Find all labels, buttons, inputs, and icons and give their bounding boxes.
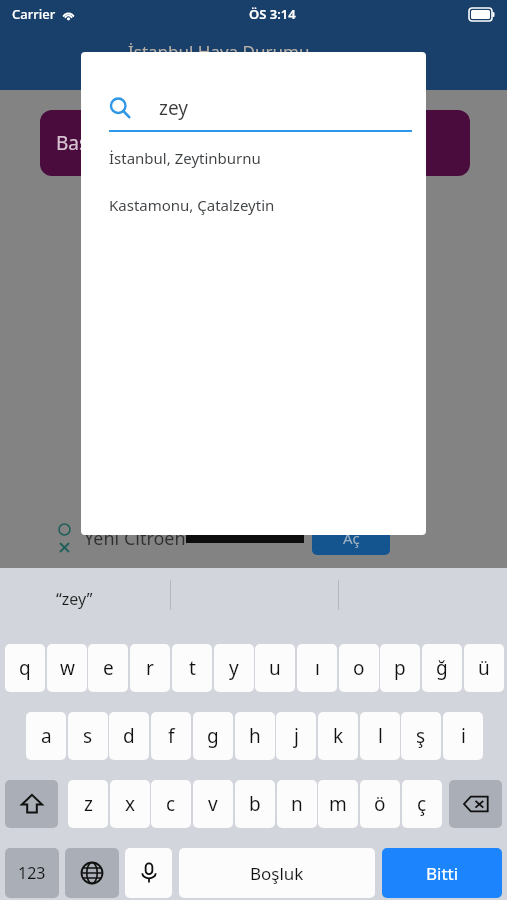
button[interactable]: m [318, 780, 358, 828]
staticText: Kastamonu, Çatalzeytin [109, 195, 275, 215]
button[interactable]: Backspace [449, 780, 502, 828]
button[interactable]: y [214, 644, 254, 692]
button[interactable]: n [277, 780, 317, 828]
staticText: İstanbul Hava Durumu [128, 40, 310, 63]
staticText: q [19, 655, 31, 681]
staticText: Carrier [12, 5, 56, 23]
staticText: u [269, 655, 281, 681]
staticText: Başlangıç [56, 130, 142, 156]
button[interactable]: z [68, 780, 108, 828]
button[interactable]: ö [360, 780, 400, 828]
staticText: Boşluk [250, 862, 304, 885]
staticText: ı [315, 655, 320, 681]
staticText: ş [416, 723, 426, 749]
staticText: s [83, 723, 93, 749]
button[interactable]: ç [402, 780, 442, 828]
button[interactable]: t [172, 644, 212, 692]
button[interactable]: Kastamonu, Çatalzeytin [109, 192, 412, 218]
staticText: t [189, 655, 196, 681]
staticText: x [125, 791, 136, 817]
button[interactable]: w [47, 644, 87, 692]
button[interactable]: İstanbul, Zeytinburnu [109, 145, 412, 171]
staticText: ü [478, 655, 490, 681]
staticText: w [60, 655, 75, 681]
button[interactable]: ı [297, 644, 337, 692]
staticText: ö [374, 791, 386, 817]
button[interactable]: Shift [5, 780, 58, 828]
button[interactable]: Dictate [125, 848, 172, 898]
button[interactable]: g [193, 712, 233, 760]
staticText: i [461, 723, 466, 749]
staticText: İstanbul, Zeytinburnu [109, 148, 261, 168]
button[interactable]: Aç [312, 521, 390, 555]
staticText: v [208, 791, 218, 817]
button[interactable]: s [68, 712, 108, 760]
button[interactable]: p [380, 644, 420, 692]
button[interactable]: Boşluk [179, 848, 375, 898]
staticText: r [146, 655, 154, 681]
staticText: Aç [343, 528, 360, 548]
staticText: 123 [18, 862, 46, 884]
staticText: l [378, 723, 383, 749]
button[interactable]: Change keyboard [65, 848, 119, 898]
button[interactable]: Bitti [382, 848, 502, 898]
button[interactable]: f [151, 712, 191, 760]
button[interactable]: e [88, 644, 128, 692]
staticText: g [207, 723, 219, 749]
button[interactable]: a [26, 712, 66, 760]
button[interactable]: o [339, 644, 379, 692]
staticText: “zey” [56, 588, 93, 610]
staticText: a [41, 723, 52, 749]
staticText: z [84, 791, 93, 817]
button[interactable]: j [276, 712, 316, 760]
button[interactable]: d [109, 712, 149, 760]
staticText: Yeni Citroen [84, 526, 186, 551]
button[interactable]: h [235, 712, 275, 760]
button[interactable]: r [130, 644, 170, 692]
staticText: Bitti [426, 862, 459, 885]
button[interactable]: v [193, 780, 233, 828]
button[interactable]: Yeni Citroen [58, 508, 448, 568]
button[interactable]: q [5, 644, 45, 692]
staticText: k [333, 723, 344, 749]
button[interactable]: ü [464, 644, 504, 692]
staticText: h [249, 723, 261, 749]
staticText: j [294, 723, 299, 749]
staticText: ÖS 3:14 [249, 5, 296, 23]
staticText: ç [417, 791, 427, 817]
staticText: f [168, 723, 175, 749]
button[interactable]: 123 [5, 848, 59, 898]
staticText: n [291, 791, 303, 817]
staticText: c [166, 791, 176, 817]
staticText: m [329, 791, 347, 817]
staticText: p [394, 655, 406, 681]
button[interactable]: k [318, 712, 358, 760]
staticText: d [123, 723, 135, 749]
button[interactable]: l [360, 712, 400, 760]
button[interactable]: Başlangıç [40, 110, 470, 176]
staticText: e [103, 655, 114, 681]
button[interactable]: b [235, 780, 275, 828]
button[interactable]: i [443, 712, 483, 760]
staticText: ğ [436, 655, 448, 681]
button[interactable]: ş [401, 712, 441, 760]
staticText: y [229, 655, 239, 681]
button[interactable]: x [110, 780, 150, 828]
staticText: o [353, 655, 365, 681]
button[interactable]: u [255, 644, 295, 692]
button[interactable]: ğ [422, 644, 462, 692]
staticText: zey [159, 95, 188, 121]
staticText: b [249, 791, 261, 817]
button[interactable]: zey [109, 86, 412, 130]
button[interactable]: c [151, 780, 191, 828]
